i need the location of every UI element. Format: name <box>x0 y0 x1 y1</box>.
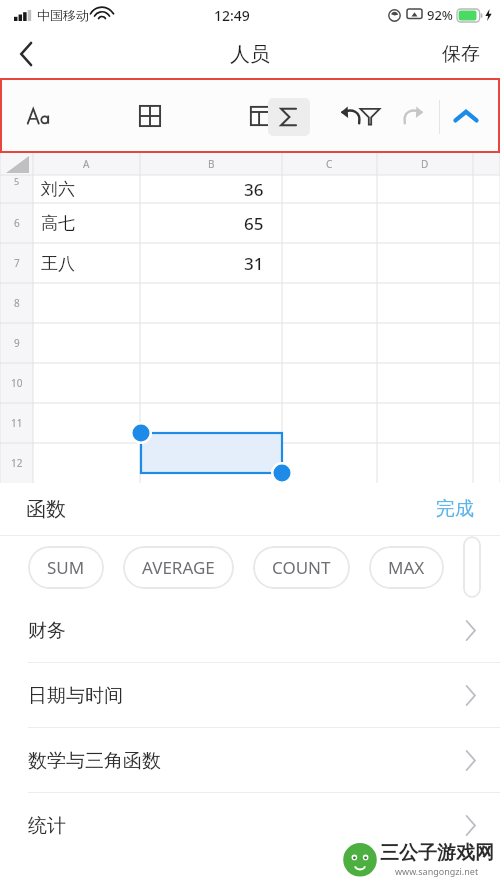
button[interactable]: Undo <box>329 80 373 151</box>
staticText: 完成 <box>436 497 474 521</box>
staticText: 刘六 <box>41 179 75 200</box>
staticText: 36 <box>244 178 264 201</box>
button[interactable]: 日期与时间 <box>0 663 500 728</box>
staticText: 财务 <box>28 619 66 643</box>
button[interactable]: Redo <box>391 80 435 151</box>
staticText: 6 <box>14 216 20 230</box>
staticText: 12 <box>11 456 23 470</box>
button[interactable]: 财务 <box>0 598 500 663</box>
button[interactable]: COUNT <box>253 546 350 589</box>
button[interactable]: Function <box>268 98 310 136</box>
button[interactable]: 数学与三角函数 <box>0 728 500 793</box>
staticText: B <box>208 157 215 171</box>
staticText: 8 <box>14 296 20 310</box>
staticText: 高七 <box>41 213 75 234</box>
staticText: AVERAGE <box>142 556 215 579</box>
staticText: 日期与时间 <box>28 684 123 708</box>
staticText: COUNT <box>272 556 331 579</box>
button[interactable]: AVERAGE <box>123 546 234 589</box>
button[interactable]: MIN <box>463 536 481 598</box>
staticText: 中国移动 <box>37 7 89 23</box>
staticText: MAX <box>388 556 425 579</box>
staticText: 数学与三角函数 <box>28 749 161 773</box>
staticText: C <box>326 157 333 171</box>
staticText: D <box>421 157 429 171</box>
staticText: 函数 <box>26 497 66 522</box>
button[interactable]: Filter <box>346 80 394 151</box>
button[interactable]: Back <box>0 30 52 78</box>
staticText: 三公子游戏网 <box>380 841 494 865</box>
staticText: 9 <box>14 336 20 350</box>
staticText: SUM <box>47 556 85 579</box>
staticText: 65 <box>244 212 264 235</box>
staticText: 92% <box>427 6 453 24</box>
staticText: 7 <box>14 256 20 270</box>
button[interactable]: 保存 <box>436 36 486 72</box>
button[interactable]: Text format <box>15 80 63 151</box>
button[interactable]: Table style <box>236 80 284 151</box>
staticText: 12:49 <box>214 6 250 25</box>
staticText: 10 <box>11 376 23 390</box>
staticText: 保存 <box>442 42 480 66</box>
button[interactable]: SUM <box>28 546 104 589</box>
button[interactable]: 统计 <box>0 793 500 858</box>
staticText: 31 <box>244 252 264 275</box>
staticText: 5 <box>14 175 20 187</box>
staticText: 统计 <box>28 814 66 838</box>
button[interactable]: 完成 <box>430 491 480 527</box>
staticText: 11 <box>11 416 23 430</box>
staticText: www.sangongzi.net <box>395 865 479 877</box>
staticText: 人员 <box>230 42 270 67</box>
button[interactable]: MAX <box>369 546 444 589</box>
button[interactable]: Table grid <box>126 80 174 151</box>
staticText: 王八 <box>41 253 75 274</box>
staticText: A <box>83 157 90 171</box>
button[interactable]: Collapse toolbar <box>442 80 490 151</box>
